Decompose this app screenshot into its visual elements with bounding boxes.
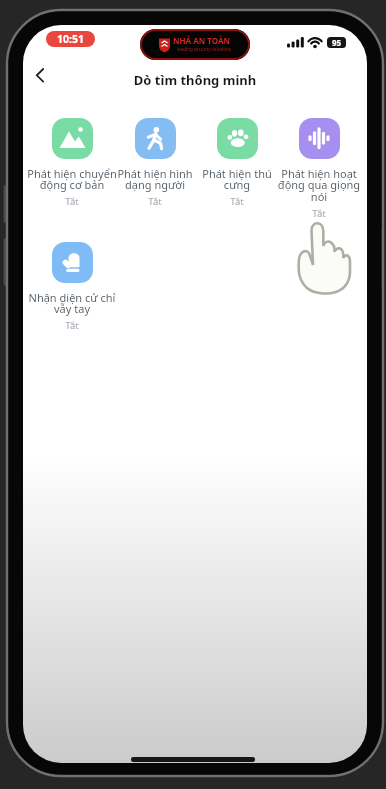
staticText: Tắt <box>27 195 117 208</box>
staticText: Tắt <box>274 207 364 220</box>
button[interactable]: Nhận diện cử chỉ vẫy tay <box>27 242 117 332</box>
staticText: NHÀ AN TOÀN <box>173 35 231 46</box>
staticText: Phát hiện chuyển động cơ bản <box>27 166 117 192</box>
button[interactable]: Phát hiện hoạt động qua giọng nói <box>274 118 364 220</box>
button[interactable]: Phát hiện hình dạng người <box>110 118 200 208</box>
button[interactable] <box>27 63 51 87</box>
staticText: Dò tìm thông minh <box>23 71 367 89</box>
staticText: Nhận diện cử chỉ vẫy tay <box>27 290 117 316</box>
button[interactable]: Phát hiện chuyển động cơ bản <box>27 118 117 208</box>
staticText: Phát hiện thú cưng <box>192 166 282 192</box>
staticText: Tắt <box>110 195 200 208</box>
button[interactable]: Phát hiện thú cưng <box>192 118 282 208</box>
staticText: Tắt <box>192 195 282 208</box>
staticText: leading security solutions <box>177 46 231 52</box>
staticText: Tắt <box>27 319 117 332</box>
staticText: 10:51 <box>57 32 84 46</box>
staticText: Phát hiện hình dạng người <box>110 166 200 192</box>
staticText: Phát hiện hoạt động qua giọng nói <box>274 166 364 204</box>
staticText: 95 <box>332 37 342 48</box>
